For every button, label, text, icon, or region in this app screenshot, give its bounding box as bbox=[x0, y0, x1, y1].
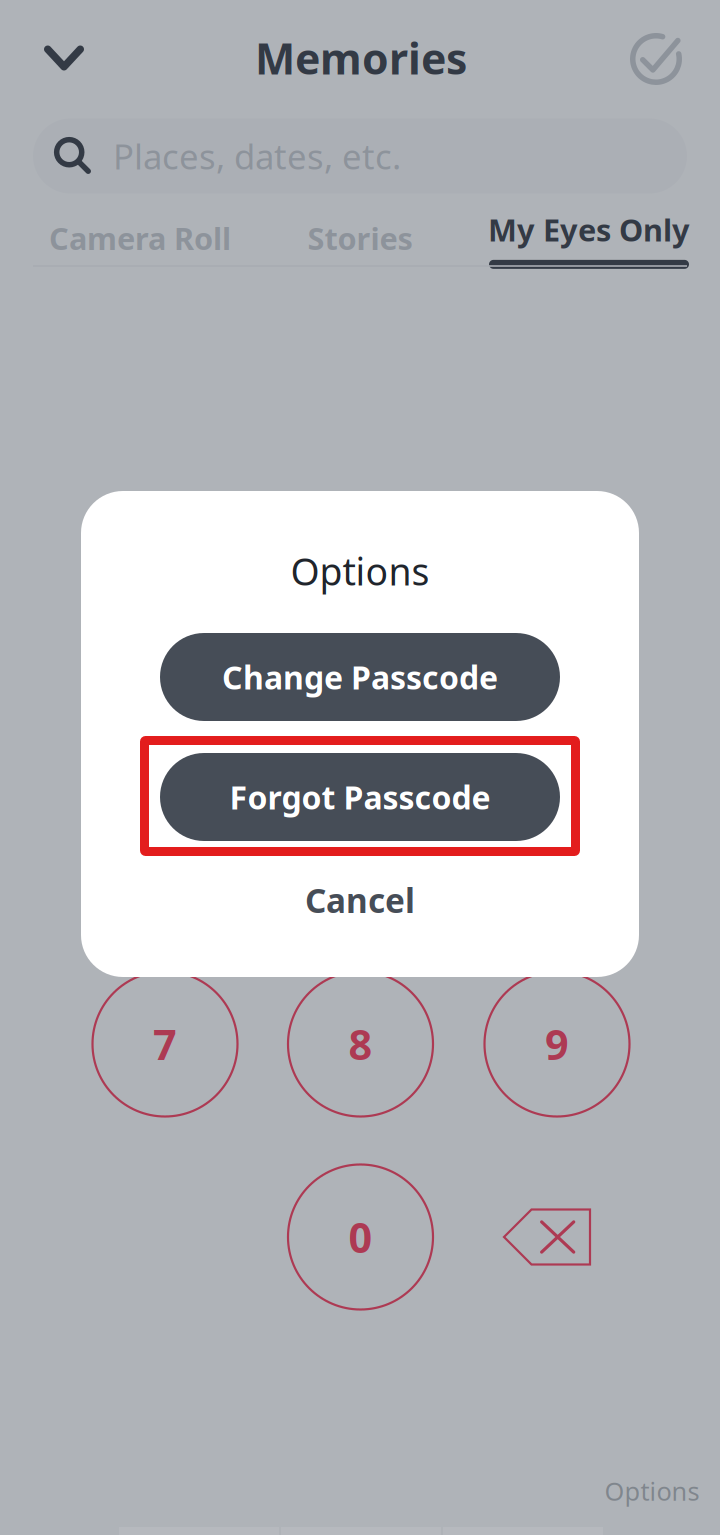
staticText: 9 bbox=[545, 1017, 569, 1071]
button[interactable]: Places, dates, etc. bbox=[33, 118, 687, 193]
button[interactable]: My Eyes Only bbox=[481, 204, 696, 274]
staticText: Forgot Passcode bbox=[229, 776, 490, 818]
button[interactable]: Cancel bbox=[260, 870, 460, 930]
button[interactable]: 0 bbox=[288, 1164, 433, 1309]
staticText: My Eyes Only bbox=[488, 209, 690, 250]
button[interactable]: 8 bbox=[288, 971, 433, 1116]
button[interactable]: Select bbox=[608, 17, 704, 101]
button[interactable]: Options bbox=[592, 1467, 712, 1515]
staticText: Camera Roll bbox=[49, 218, 231, 258]
staticText: Stories bbox=[307, 218, 412, 258]
staticText: Change Passcode bbox=[222, 656, 498, 698]
button[interactable]: 9 bbox=[484, 971, 629, 1116]
staticText: Options bbox=[290, 546, 429, 596]
staticText: Places, dates, etc. bbox=[113, 133, 401, 179]
button[interactable]: 7 bbox=[92, 971, 237, 1116]
staticText: 8 bbox=[348, 1017, 372, 1071]
button[interactable]: Forgot Passcode bbox=[160, 753, 560, 841]
button[interactable]: Close bbox=[16, 16, 112, 100]
staticText: Cancel bbox=[305, 878, 415, 922]
staticText: Options bbox=[604, 1474, 699, 1508]
button[interactable]: Camera Roll bbox=[32, 207, 247, 269]
button[interactable]: Delete bbox=[502, 1208, 591, 1266]
button[interactable]: Change Passcode bbox=[160, 633, 560, 721]
staticText: Memories bbox=[255, 30, 467, 86]
button[interactable]: Stories bbox=[270, 207, 450, 269]
staticText: 7 bbox=[153, 1017, 177, 1071]
staticText: 0 bbox=[348, 1210, 372, 1264]
